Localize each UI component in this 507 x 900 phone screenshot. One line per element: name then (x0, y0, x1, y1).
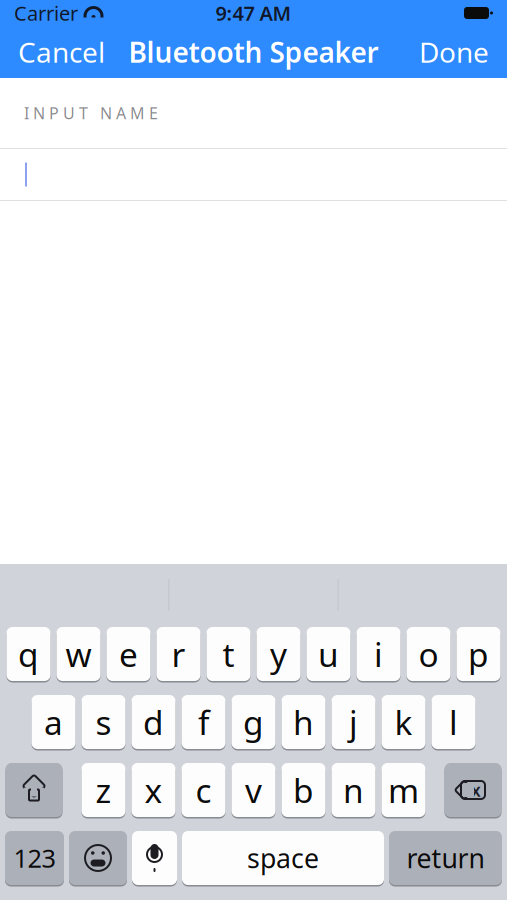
staticText: b (293, 768, 314, 812)
staticText: y (270, 632, 287, 676)
button[interactable]: p (456, 626, 500, 682)
staticText: k (394, 700, 412, 744)
button[interactable]: return (389, 830, 502, 886)
staticText: h (293, 700, 314, 744)
staticText: 9:47 AM (215, 0, 291, 26)
staticText: c (195, 768, 211, 812)
button[interactable]: Done (401, 23, 507, 81)
button[interactable]: i (356, 626, 400, 682)
button[interactable]: f (181, 694, 225, 750)
button[interactable]: q (6, 626, 50, 682)
staticText: d (143, 700, 164, 744)
button[interactable]: v (231, 762, 275, 818)
staticText: x (144, 768, 162, 812)
button[interactable]: c (181, 762, 225, 818)
button[interactable]: z (81, 762, 125, 818)
staticText: t (222, 632, 234, 676)
staticText: I N P U T N A M E (24, 102, 158, 124)
button[interactable]: Dictation (132, 830, 177, 886)
button[interactable]: Emoji (69, 830, 127, 886)
staticText: w (65, 632, 91, 676)
staticText: Done (419, 33, 489, 71)
button[interactable]: m (381, 762, 425, 818)
staticText: m (388, 768, 419, 812)
staticText: g (243, 700, 264, 744)
button[interactable]: k (381, 694, 425, 750)
button[interactable]: b (281, 762, 325, 818)
button[interactable]: e (106, 626, 150, 682)
staticText: n (343, 768, 364, 812)
button[interactable]: s (81, 694, 125, 750)
staticText: f (198, 700, 209, 744)
button[interactable]: j (331, 694, 375, 750)
button[interactable] (0, 149, 507, 200)
staticText: o (418, 632, 438, 676)
staticText: Cancel (18, 33, 105, 71)
staticText: Carrier (14, 0, 78, 26)
staticText: x (471, 778, 481, 801)
button[interactable]: u (306, 626, 350, 682)
staticText: z (95, 768, 111, 812)
button[interactable]: o (406, 626, 450, 682)
staticText: a (44, 700, 63, 744)
staticText: s (95, 700, 111, 744)
button[interactable]: r (156, 626, 200, 682)
button[interactable]: h (281, 694, 325, 750)
button[interactable]: Shift (5, 762, 62, 818)
staticText: p (468, 632, 489, 676)
button[interactable]: space (182, 830, 384, 886)
staticText: return (406, 840, 484, 876)
button[interactable]: g (231, 694, 275, 750)
button[interactable]: y (256, 626, 300, 682)
button[interactable]: d (131, 694, 175, 750)
staticText: 123 (13, 841, 55, 875)
button[interactable]: t (206, 626, 250, 682)
button[interactable]: w (56, 626, 100, 682)
button[interactable]: x (131, 762, 175, 818)
button[interactable]: Numbers (5, 830, 64, 886)
button[interactable]: l (431, 694, 475, 750)
staticText: j (349, 700, 358, 744)
button[interactable]: Delete (444, 762, 501, 818)
staticText: e (119, 632, 138, 676)
button[interactable]: Cancel (0, 23, 123, 81)
staticText: space (247, 840, 319, 876)
staticText: i (374, 632, 383, 676)
staticText: Bluetooth Speaker (128, 33, 378, 71)
button[interactable]: n (331, 762, 375, 818)
staticText: v (245, 768, 262, 812)
staticText: q (18, 632, 39, 676)
staticText: u (318, 632, 339, 676)
staticText: r (171, 632, 185, 676)
button[interactable]: a (31, 694, 75, 750)
staticText: l (449, 700, 458, 744)
